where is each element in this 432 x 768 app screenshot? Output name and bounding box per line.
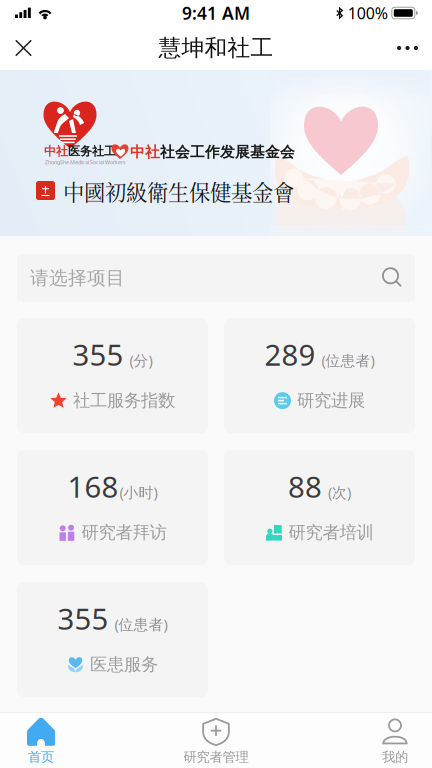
staticText: 医务社工 bbox=[68, 144, 116, 159]
staticText: (小时) bbox=[119, 482, 157, 502]
staticText: 慧坤和社工 bbox=[158, 34, 273, 62]
staticText: (位患者) bbox=[321, 350, 374, 370]
staticText: 355 bbox=[57, 599, 108, 638]
staticText: 医患服务 bbox=[90, 654, 158, 675]
button[interactable]: 首页 bbox=[0, 713, 82, 768]
staticText: 研究进展 bbox=[297, 390, 365, 411]
button[interactable]: More options bbox=[383, 27, 432, 69]
staticText: 研究者培训 bbox=[288, 522, 373, 543]
staticText: 中國初級衛生保健基金會 bbox=[63, 176, 294, 207]
button[interactable]: 355 bbox=[17, 318, 208, 433]
staticText: ZhongShe Medical Social Workers bbox=[45, 159, 126, 166]
staticText: 355 bbox=[72, 335, 123, 374]
staticText: 9:41 AM bbox=[182, 1, 250, 24]
staticText: (分) bbox=[129, 350, 152, 370]
staticText: 中社 bbox=[44, 144, 68, 159]
button[interactable]: 88 bbox=[224, 450, 415, 565]
button[interactable]: 355 bbox=[17, 582, 208, 697]
staticText: 社工服务指数 bbox=[73, 390, 175, 411]
staticText: 社会工作发展基金会 bbox=[160, 143, 295, 161]
button[interactable]: 我的 bbox=[354, 713, 432, 768]
staticText: 100% bbox=[348, 2, 388, 24]
staticText: 我的 bbox=[382, 749, 408, 765]
staticText: 中社 bbox=[130, 143, 160, 161]
button[interactable]: 289 bbox=[224, 318, 415, 433]
staticText: 289 bbox=[264, 335, 315, 374]
button[interactable]: Close bbox=[0, 26, 47, 69]
staticText: 168 bbox=[67, 467, 118, 506]
staticText: (位患者) bbox=[114, 614, 167, 634]
staticText: 研究者管理 bbox=[183, 749, 248, 765]
staticText: 首页 bbox=[28, 749, 54, 765]
button[interactable]: 请选择项目 bbox=[17, 254, 415, 302]
button[interactable]: 168 bbox=[17, 450, 208, 565]
button[interactable]: 研究者管理 bbox=[156, 713, 276, 768]
staticText: 研究者拜访 bbox=[81, 522, 166, 543]
staticText: 请选择项目 bbox=[30, 266, 125, 289]
staticText: (次) bbox=[328, 482, 351, 502]
staticText: 88 bbox=[288, 467, 322, 506]
